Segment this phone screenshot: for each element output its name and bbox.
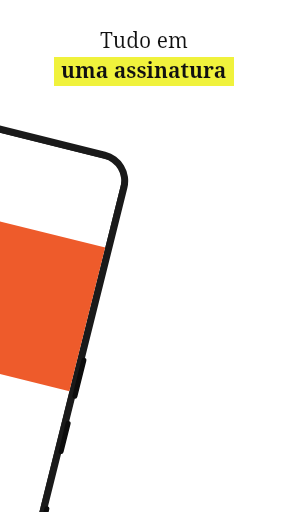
button[interactable]: Tudo em uma assinatura	[0, 0, 288, 512]
